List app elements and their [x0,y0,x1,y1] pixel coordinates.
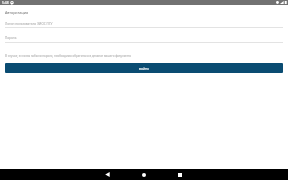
staticText: Пароль [5,36,17,40]
button[interactable]: Логин пользователя ЭИОС ПГУ [5,19,283,28]
staticText: Логин пользователя ЭИОС ПГУ [5,22,53,26]
button[interactable]: войти [5,63,283,73]
button[interactable]: Back [102,169,112,180]
button[interactable]: Recent apps [175,169,185,180]
button[interactable]: Home [139,169,149,180]
staticText: Авторизация [5,10,29,15]
staticText: войти [139,66,149,71]
button[interactable]: Пароль [5,34,283,43]
staticText: 5:48 [2,0,9,4]
staticText: В случае, если вы забыли пароль, необход… [5,54,131,58]
